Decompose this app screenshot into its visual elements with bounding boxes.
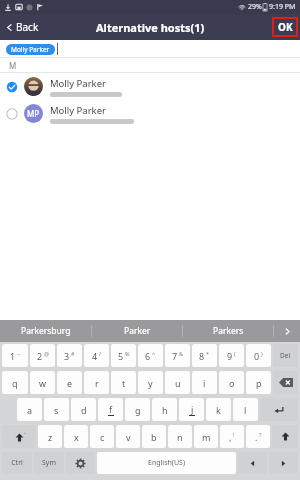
button[interactable]: s: [44, 398, 69, 421]
button[interactable]: g: [125, 398, 150, 421]
button[interactable]: j: [179, 398, 204, 421]
staticText: 5: [118, 350, 124, 362]
button[interactable]: p: [246, 371, 271, 394]
button[interactable]: Enter: [260, 398, 298, 421]
staticText: z: [48, 431, 53, 443]
staticText: u: [175, 377, 181, 389]
staticText: Parker: [124, 325, 151, 337]
button[interactable]: i: [192, 371, 217, 394]
staticText: 9:19 PM: [269, 2, 296, 12]
button[interactable]: Keyboard settings: [66, 452, 95, 474]
staticText: 7: [172, 350, 178, 362]
staticText: %: [125, 350, 130, 357]
staticText: *: [206, 350, 210, 357]
staticText: p: [256, 377, 262, 389]
staticText: j: [191, 403, 194, 415]
button[interactable]: x: [64, 425, 88, 448]
staticText: M: [9, 60, 17, 71]
button[interactable]: 1: [2, 344, 28, 367]
button[interactable]: t: [111, 371, 136, 394]
button[interactable]: e: [57, 371, 82, 394]
staticText: Back: [16, 20, 39, 34]
button[interactable]: b: [142, 425, 166, 448]
button[interactable]: More suggestions: [274, 320, 300, 342]
staticText: 3: [64, 350, 70, 362]
button[interactable]: Ctrl: [2, 452, 32, 474]
staticText: e: [67, 377, 73, 389]
staticText: ,: [229, 431, 232, 443]
button[interactable]: Parkersburg: [0, 320, 91, 342]
button[interactable]: Move cursor right: [269, 452, 298, 474]
staticText: Ctrl: [11, 458, 23, 468]
button[interactable]: d: [71, 398, 96, 421]
staticText: 6: [145, 350, 151, 362]
button[interactable]: w: [30, 371, 55, 394]
button[interactable]: English(US): [97, 452, 236, 474]
staticText: (: [234, 350, 236, 357]
staticText: 0: [254, 350, 260, 362]
button[interactable]: u: [165, 371, 190, 394]
staticText: a: [27, 404, 33, 416]
button[interactable]: .: [246, 425, 270, 448]
staticText: OK: [278, 20, 293, 34]
button[interactable]: MP: [0, 100, 300, 127]
staticText: ~: [17, 350, 21, 357]
staticText: t: [122, 377, 126, 389]
button[interactable]: 3: [57, 344, 82, 367]
button[interactable]: Molly Parker: [0, 73, 300, 100]
button[interactable]: Backspace: [273, 371, 298, 394]
staticText: Molly Parker: [11, 45, 50, 54]
staticText: v: [126, 431, 131, 443]
button[interactable]: 6: [138, 344, 163, 367]
button[interactable]: Shift: [2, 425, 36, 448]
button[interactable]: Molly Parker: [6, 44, 55, 55]
button[interactable]: 5: [111, 344, 136, 367]
button[interactable]: OK: [274, 19, 296, 35]
button[interactable]: Sym: [34, 452, 64, 474]
button[interactable]: Shift: [272, 425, 298, 448]
staticText: English(US): [148, 458, 185, 468]
button[interactable]: c: [90, 425, 114, 448]
button[interactable]: 4: [84, 344, 109, 367]
button[interactable]: Back: [0, 16, 45, 38]
button[interactable]: Parkers: [183, 320, 273, 342]
staticText: x: [74, 431, 79, 443]
staticText: f: [109, 403, 113, 415]
button[interactable]: a: [17, 398, 42, 421]
staticText: Molly Parker: [50, 77, 106, 90]
button[interactable]: h: [152, 398, 177, 421]
button[interactable]: 7: [165, 344, 190, 367]
button[interactable]: q: [2, 371, 28, 394]
staticText: i: [203, 377, 206, 389]
staticText: h: [162, 404, 168, 416]
staticText: k: [216, 404, 221, 416]
staticText: n: [177, 431, 183, 443]
button[interactable]: n: [168, 425, 192, 448]
button[interactable]: r: [84, 371, 109, 394]
button[interactable]: l: [233, 398, 258, 421]
staticText: #: [71, 350, 75, 357]
staticText: o: [229, 377, 235, 389]
button[interactable]: k: [206, 398, 231, 421]
button[interactable]: 2: [30, 344, 55, 367]
staticText: 4: [92, 350, 98, 362]
button[interactable]: v: [116, 425, 140, 448]
button[interactable]: 8: [192, 344, 217, 367]
button[interactable]: ,: [220, 425, 244, 448]
staticText: b: [151, 431, 157, 443]
button[interactable]: y: [138, 371, 163, 394]
button[interactable]: z: [38, 425, 62, 448]
button[interactable]: o: [219, 371, 244, 394]
button[interactable]: Parker: [92, 320, 182, 342]
staticText: ·: [24, 429, 26, 439]
staticText: d: [81, 404, 87, 416]
staticText: .: [255, 431, 258, 443]
button[interactable]: Del: [273, 344, 298, 367]
staticText: /: [99, 350, 102, 357]
staticText: @: [44, 350, 49, 357]
button[interactable]: 0: [246, 344, 271, 367]
button[interactable]: f: [98, 398, 123, 421]
button[interactable]: 9: [219, 344, 244, 367]
button[interactable]: Move cursor left: [238, 452, 267, 474]
button[interactable]: m: [194, 425, 218, 448]
